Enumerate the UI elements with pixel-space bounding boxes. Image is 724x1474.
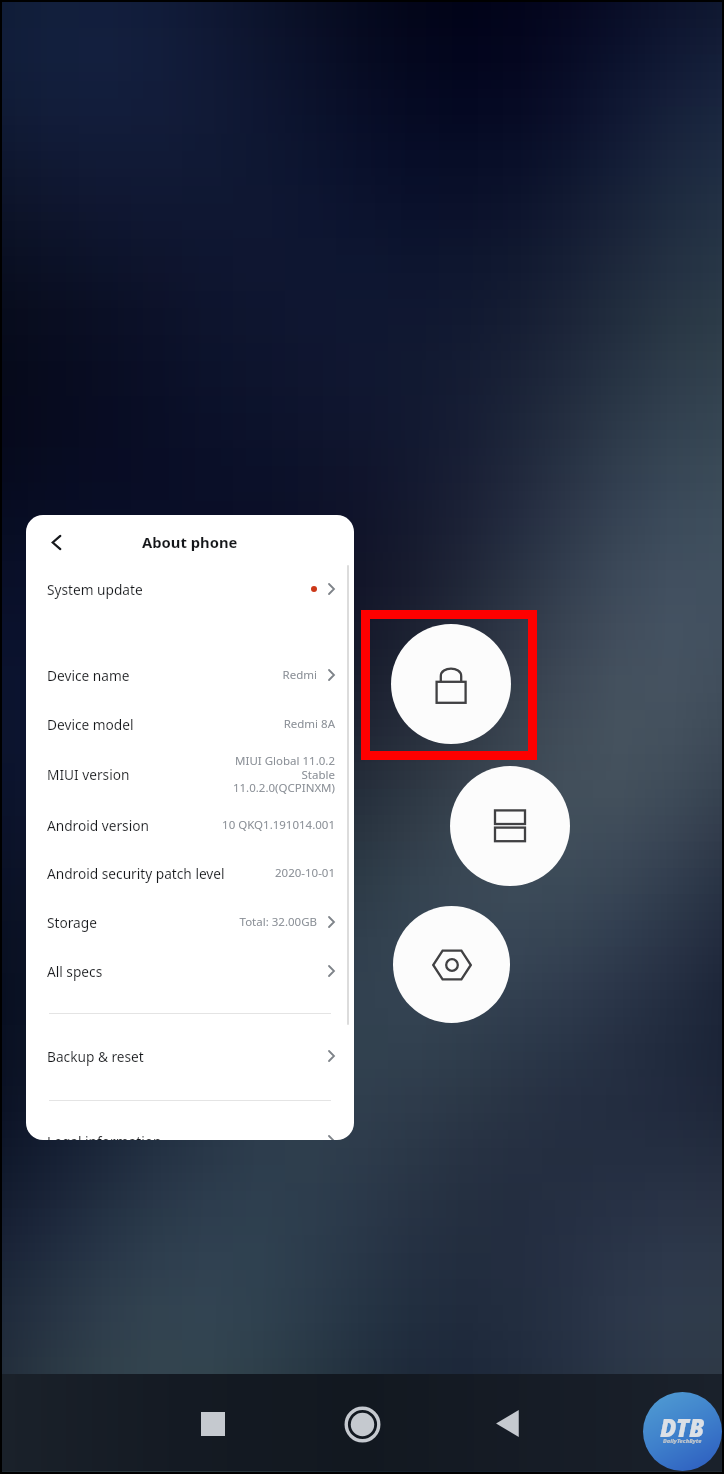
staticText: Device model (47, 715, 134, 734)
button[interactable]: Lock app (391, 624, 511, 744)
staticText: 10 QKQ1.191014.001 (222, 817, 335, 833)
button[interactable]: Back (36, 522, 76, 562)
staticText: Total: 32.00GB (239, 914, 317, 930)
button[interactable]: Android version (26, 801, 354, 849)
staticText: Device name (47, 666, 130, 685)
button[interactable]: Device model (26, 700, 354, 748)
staticText: System update (47, 580, 143, 599)
button[interactable]: Split screen (450, 766, 570, 886)
button[interactable]: Storage (26, 898, 354, 946)
button[interactable]: MIUI version (26, 748, 354, 800)
staticText: Android version (47, 816, 149, 835)
button[interactable]: Legal information (26, 1117, 354, 1140)
button[interactable]: App info (393, 906, 510, 1023)
staticText: Android security patch level (47, 864, 225, 883)
button[interactable]: Device name (26, 651, 354, 699)
staticText: MIUI version (47, 765, 130, 784)
button[interactable]: System update (26, 565, 354, 613)
button[interactable]: Home (345, 1407, 380, 1442)
staticText: Storage (47, 913, 97, 932)
staticText: Redmi 8A (283, 716, 335, 732)
staticText: MIUI Global 11.0.2 Stable 11.0.2.0(QCPIN… (232, 753, 335, 795)
staticText: Legal information (47, 1132, 162, 1140)
staticText: DTB (660, 1411, 705, 1444)
button[interactable]: Android security patch level (26, 849, 354, 897)
staticText: 2020-10-01 (274, 865, 335, 881)
staticText: DailyTechByte (663, 1437, 702, 1445)
button[interactable]: Back (495, 1410, 522, 1437)
staticText: About phone (142, 532, 238, 552)
staticText: Redmi (282, 667, 317, 683)
staticText: Backup & reset (47, 1047, 144, 1066)
staticText: All specs (47, 962, 103, 981)
button[interactable]: Backup & reset (26, 1032, 354, 1080)
button[interactable]: All specs (26, 947, 354, 995)
